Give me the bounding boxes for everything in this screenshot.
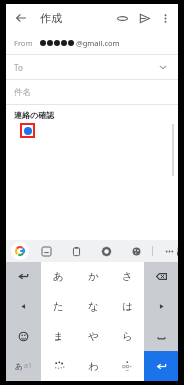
- button[interactable]: right: [144, 291, 178, 321]
- staticText: @gmail.com: [76, 38, 120, 48]
- button[interactable]: や: [76, 321, 110, 351]
- button[interactable]: Back: [10, 7, 32, 29]
- button[interactable]: More: [161, 243, 177, 259]
- button[interactable]: Settings: [98, 243, 114, 259]
- button[interactable]: enter: [144, 351, 178, 381]
- button[interactable]: mode: [6, 351, 41, 381]
- button[interactable]: Expand recipients: [155, 59, 171, 75]
- button[interactable]: は: [110, 291, 144, 321]
- staticText: な: [88, 300, 99, 313]
- staticText: To: [14, 62, 23, 73]
- staticText: か: [88, 270, 99, 283]
- button[interactable]: な: [76, 291, 110, 321]
- button[interactable]: わ: [76, 351, 110, 381]
- staticText: さ: [122, 270, 133, 283]
- button[interactable]: left: [6, 291, 41, 321]
- staticText: あ: [53, 270, 64, 283]
- button[interactable]: space: [144, 321, 178, 351]
- button[interactable]: [41, 351, 76, 381]
- button[interactable]: か: [76, 262, 110, 291]
- button[interactable]: さ: [110, 262, 144, 291]
- staticText: あ: [15, 361, 24, 371]
- staticText: a1: [24, 361, 32, 371]
- staticText: た: [53, 300, 64, 313]
- button[interactable]: undo: [6, 262, 41, 291]
- staticText: や: [88, 330, 99, 343]
- button[interactable]: 連絡の確認: [6, 105, 178, 240]
- button[interactable]: Send: [133, 7, 155, 29]
- staticText: 作成: [40, 11, 62, 25]
- staticText: わ: [88, 360, 99, 373]
- staticText: は: [122, 300, 133, 313]
- other: Text cursor handle: [20, 123, 35, 138]
- button[interactable]: 件名: [6, 80, 178, 104]
- button[interactable]: あ: [41, 262, 76, 291]
- button[interactable]: To: [6, 55, 178, 79]
- button[interactable]: From: [6, 31, 178, 54]
- button[interactable]: ら: [110, 321, 144, 351]
- button[interactable]: Attach file: [111, 7, 133, 29]
- button[interactable]: Stickers: [38, 243, 54, 259]
- button[interactable]: た: [41, 291, 76, 321]
- button[interactable]: Theme: [128, 243, 144, 259]
- button[interactable]: backspace: [144, 262, 178, 291]
- button[interactable]: Clipboard: [68, 243, 84, 259]
- button[interactable]: [110, 351, 144, 381]
- staticText: 連絡の確認: [14, 110, 55, 120]
- staticText: ら: [122, 330, 133, 343]
- staticText: From: [14, 38, 33, 48]
- button[interactable]: More options: [155, 8, 175, 28]
- staticText: 件名: [14, 87, 31, 98]
- button[interactable]: emoji: [6, 321, 41, 351]
- button[interactable]: ま: [41, 321, 76, 351]
- button[interactable]: Google: [11, 242, 29, 260]
- button[interactable]: Voice input: [177, 243, 178, 259]
- staticText: ま: [53, 330, 64, 343]
